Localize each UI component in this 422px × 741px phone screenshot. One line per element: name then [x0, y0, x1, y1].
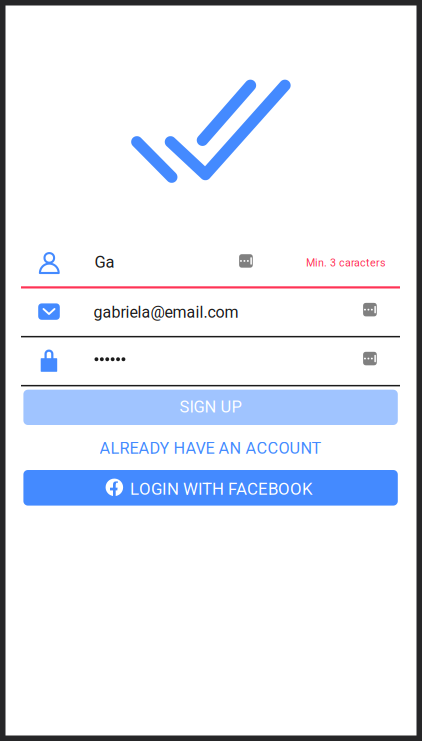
staticText: SIGN UP: [180, 397, 242, 416]
staticText: ALREADY HAVE AN ACCOUNT: [100, 439, 322, 458]
button[interactable]: SIGN UP: [23, 390, 398, 425]
staticText: Min. 3 caracters: [306, 256, 386, 269]
staticText: Ga: [95, 252, 115, 272]
staticText: gabriela@email.com: [93, 303, 238, 322]
button[interactable]: ALREADY HAVE AN ACCOUNT: [23, 435, 398, 461]
staticText: LOGIN WITH FACEBOOK: [130, 479, 313, 499]
button[interactable]: LOGIN WITH FACEBOOK: [23, 470, 398, 506]
